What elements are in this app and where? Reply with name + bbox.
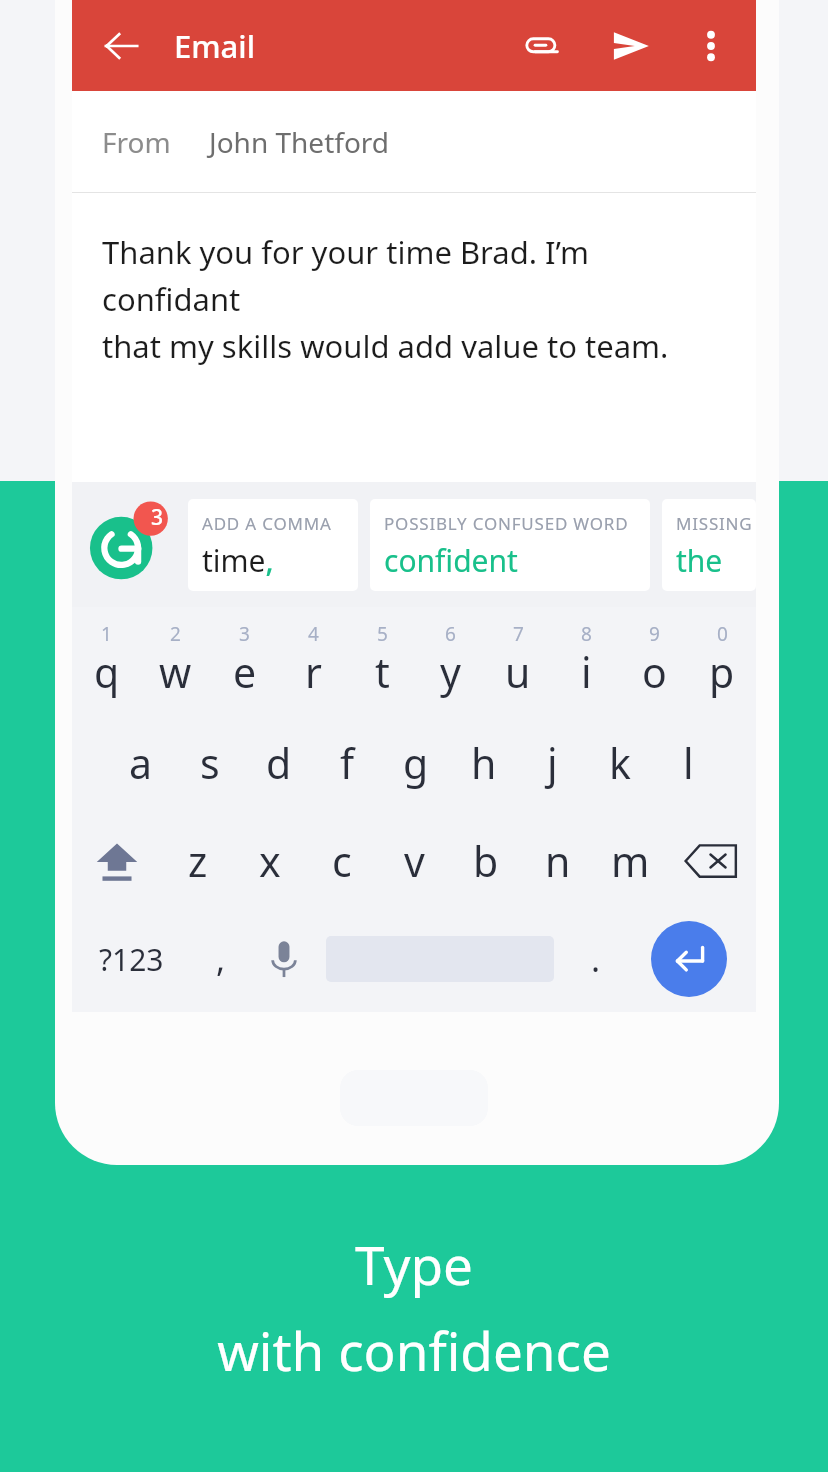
button[interactable]: b (450, 815, 522, 907)
staticText: 0 (717, 621, 728, 647)
button[interactable]: j (518, 717, 586, 809)
button[interactable]: 1 (72, 619, 141, 711)
staticText: m (611, 833, 650, 889)
staticText: ?123 (99, 939, 164, 980)
staticText: , (216, 936, 226, 982)
staticText: 1 (101, 621, 112, 647)
staticText: 3 (151, 503, 164, 532)
button[interactable]: Backspace (666, 815, 756, 907)
button[interactable]: x (234, 815, 306, 907)
staticText: b (473, 833, 499, 889)
staticText: h (471, 735, 497, 791)
button[interactable]: n (522, 815, 594, 907)
button[interactable]: a (106, 717, 175, 809)
staticText: o (642, 644, 667, 700)
staticText: u (505, 644, 531, 700)
staticText: e (233, 644, 257, 700)
button[interactable]: Enter (629, 909, 748, 1009)
staticText: g (403, 735, 429, 791)
button[interactable]: 3 (210, 619, 279, 711)
button[interactable]: h (450, 717, 518, 809)
button[interactable]: k (586, 717, 654, 809)
button[interactable]: Back (90, 15, 152, 77)
button[interactable]: Shift (72, 815, 162, 907)
staticText: x (259, 833, 281, 889)
button[interactable]: Grammarly, 3 suggestions (86, 497, 174, 585)
staticText: 5 (377, 621, 388, 647)
button[interactable]: v (378, 815, 450, 907)
button[interactable]: c (306, 815, 378, 907)
button[interactable]: ?123 (72, 909, 191, 1009)
button[interactable]: l (654, 717, 722, 809)
button[interactable]: Attach file (512, 15, 574, 77)
button[interactable]: m (594, 815, 666, 907)
button[interactable]: Space (317, 909, 562, 1009)
button[interactable]: 5 (348, 619, 416, 711)
staticText: q (94, 644, 120, 700)
button[interactable]: f (313, 717, 382, 809)
button[interactable]: 0 (688, 619, 756, 711)
staticText: k (609, 735, 631, 791)
staticText: 9 (649, 621, 660, 647)
button[interactable]: Voice input (250, 909, 317, 1009)
staticText: 3 (239, 621, 250, 647)
button[interactable]: . (562, 909, 629, 1009)
staticText: n (545, 833, 571, 889)
staticText: j (547, 735, 558, 791)
button[interactable]: g (382, 717, 450, 809)
staticText: Email (174, 25, 256, 67)
staticText: time, (202, 540, 274, 581)
staticText: r (305, 644, 322, 700)
button[interactable]: d (244, 717, 313, 809)
staticText: ADD A COMMA (202, 512, 332, 535)
staticText: confident (384, 540, 518, 581)
staticText: p (709, 644, 735, 700)
staticText: 6 (445, 621, 456, 647)
staticText: s (200, 735, 220, 791)
staticText: l (683, 735, 694, 791)
staticText: POSSIBLY CONFUSED WORD (384, 512, 629, 535)
staticText: d (266, 735, 292, 791)
staticText: 4 (308, 621, 319, 647)
staticText: MISSING W (676, 512, 756, 535)
button[interactable]: Send (600, 15, 662, 77)
staticText: with confidence (217, 1314, 611, 1386)
button[interactable]: More options (684, 19, 738, 73)
button[interactable]: MISSING W (662, 499, 756, 591)
staticText: w (159, 644, 192, 700)
staticText: i (581, 644, 592, 700)
staticText: z (188, 833, 208, 889)
staticText: Type (355, 1228, 473, 1300)
staticText: 2 (170, 621, 181, 647)
staticText: Thank you for your time Brad. I’m confid… (102, 231, 734, 367)
staticText: c (332, 833, 352, 889)
button[interactable]: 9 (620, 619, 688, 711)
staticText: 7 (513, 621, 524, 647)
staticText: 8 (581, 621, 592, 647)
button[interactable]: POSSIBLY CONFUSED WORD (370, 499, 650, 591)
button[interactable]: ADD A COMMA (188, 499, 358, 591)
button[interactable]: s (175, 717, 244, 809)
staticText: John Thetford (209, 123, 390, 161)
staticText: the tea (676, 540, 756, 581)
staticText: v (404, 833, 425, 889)
staticText: From (102, 123, 171, 161)
button[interactable]: z (162, 815, 234, 907)
button[interactable]: 6 (416, 619, 484, 711)
staticText: a (129, 735, 153, 791)
button[interactable]: 4 (279, 619, 348, 711)
staticText: t (375, 644, 390, 700)
staticText: y (440, 644, 461, 700)
button[interactable]: 7 (484, 619, 552, 711)
staticText: f (340, 735, 355, 791)
button[interactable]: 8 (552, 619, 620, 711)
button[interactable]: 2 (141, 619, 210, 711)
button[interactable]: , (191, 909, 250, 1009)
staticText: . (591, 936, 601, 982)
